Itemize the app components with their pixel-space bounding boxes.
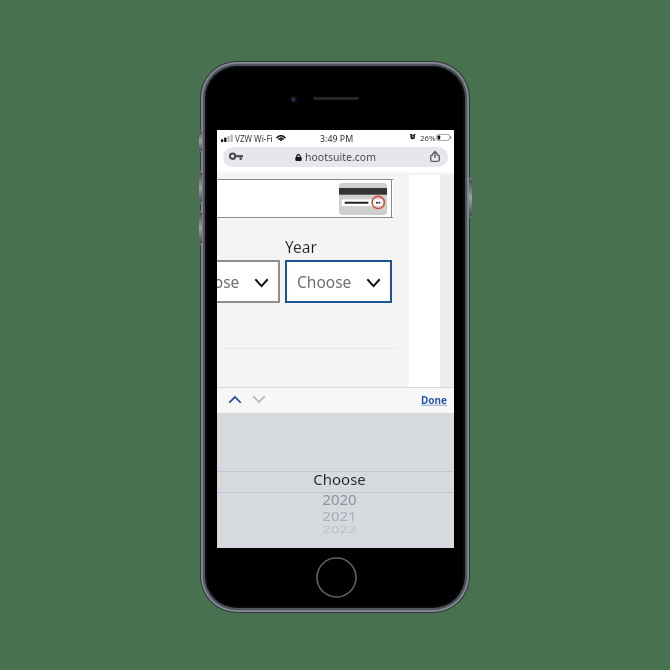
staticText: Year [285,236,317,257]
staticText: Choose [297,271,352,292]
staticText: hootsuite.com [305,150,376,164]
button[interactable]: Done [421,393,448,407]
button[interactable]: Choose [285,260,392,303]
staticText: 2021 [221,509,454,525]
staticText: Done [421,393,448,407]
other: Passwords [229,152,243,162]
button[interactable]: Next field [247,390,271,408]
button[interactable]: Choose [217,260,280,303]
staticText: VZW Wi-Fi [235,133,273,144]
button[interactable]: Passwords [223,147,448,167]
staticText: 2022 [221,523,454,535]
button[interactable]: Previous field [223,390,247,408]
staticText: 3:49 PM [320,133,354,145]
staticText: Choose [217,271,240,292]
staticText: 2020 [221,490,454,508]
staticText: 26% [420,133,436,144]
staticText: Choose [221,469,454,489]
other: Share [430,150,440,162]
